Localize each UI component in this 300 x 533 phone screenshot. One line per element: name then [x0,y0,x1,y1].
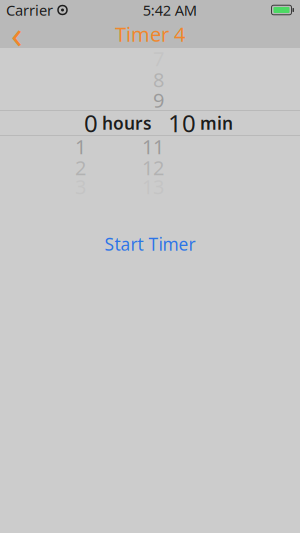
staticText: 13 [142,173,164,200]
button[interactable]: Start Timer [90,232,210,256]
staticText: hours [102,111,152,134]
staticText: 8 [153,66,164,93]
staticText: min [200,111,233,134]
staticText: 3 [75,173,86,200]
staticText: 11 [142,133,164,160]
staticText: 12 [142,154,164,181]
staticText: 0 [84,107,98,139]
staticText: Start Timer [104,232,195,255]
staticText: ‹ [11,9,23,59]
button[interactable]: Back [0,20,34,48]
staticText: 5:42 AM [143,0,197,20]
staticText: 9 [153,87,164,113]
staticText: Timer 4 [115,21,185,47]
staticText: 7 [153,45,164,72]
staticText: 1 [75,133,86,160]
staticText: 10 [168,107,196,139]
staticText: Carrier [6,0,53,20]
staticText: 2 [75,154,86,181]
